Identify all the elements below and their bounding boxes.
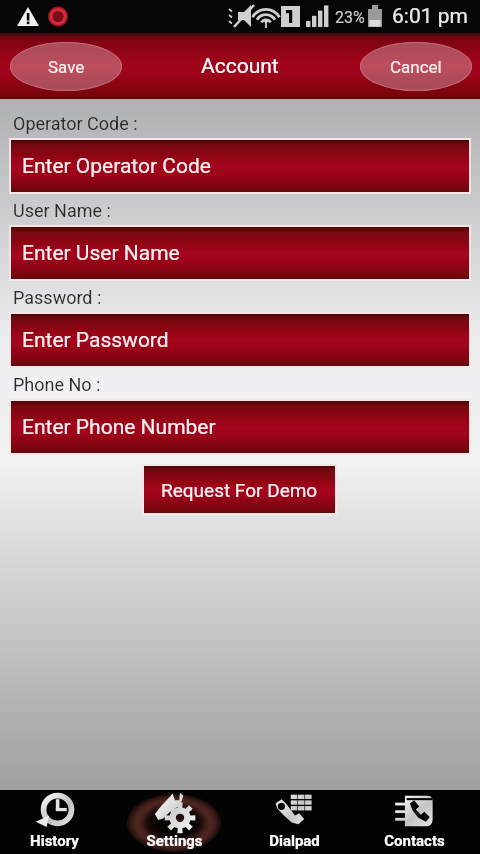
- button[interactable]: History: [0, 790, 120, 854]
- staticText: Dialpad: [269, 832, 320, 850]
- staticText: Account: [201, 54, 279, 79]
- staticText: Settings: [146, 832, 203, 850]
- button[interactable]: Request For Demo: [144, 466, 335, 513]
- button[interactable]: Enter Phone Number: [11, 401, 469, 453]
- staticText: Enter Operator Code: [22, 154, 211, 179]
- button[interactable]: Contacts: [360, 790, 480, 854]
- staticText: Enter Phone Number: [22, 415, 216, 440]
- staticText: Cancel: [390, 57, 442, 77]
- staticText: History: [30, 832, 79, 850]
- staticText: 6:01 pm: [392, 4, 468, 29]
- staticText: 23%: [335, 8, 365, 27]
- staticText: Enter Password: [22, 328, 169, 353]
- button[interactable]: Settings: [120, 790, 240, 854]
- staticText: Request For Demo: [161, 479, 318, 501]
- staticText: Phone No :: [13, 374, 101, 395]
- button[interactable]: Enter Operator Code: [11, 140, 469, 192]
- staticText: Enter User Name: [22, 241, 180, 266]
- button[interactable]: Cancel: [360, 42, 472, 91]
- staticText: Operator Code :: [13, 113, 138, 134]
- staticText: Password :: [13, 287, 102, 308]
- staticText: Contacts: [384, 832, 445, 850]
- staticText: User Name :: [13, 200, 111, 221]
- button[interactable]: Enter User Name: [11, 227, 469, 279]
- button[interactable]: Save: [10, 42, 122, 91]
- button[interactable]: Dialpad: [240, 790, 360, 854]
- button[interactable]: Enter Password: [11, 314, 469, 366]
- staticText: Save: [48, 57, 85, 77]
